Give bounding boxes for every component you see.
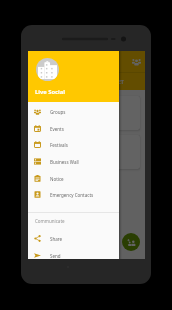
staticText: Communicate (35, 218, 65, 224)
button[interactable]: Notice (28, 170, 119, 187)
staticText: Festivals (50, 142, 68, 148)
button[interactable] (33, 135, 140, 169)
staticText: Notice (50, 176, 64, 182)
staticText: Emergency Contacts (50, 192, 94, 198)
button[interactable]: Emergency Contacts (28, 186, 119, 203)
staticText: Live Social (35, 88, 65, 96)
staticText: Business Wall (50, 159, 79, 165)
button[interactable]: Live Social (28, 51, 119, 102)
button[interactable]: Add group (122, 233, 140, 251)
staticText: Send (50, 253, 61, 259)
staticText: MARKET (103, 78, 124, 85)
staticText: Groups (50, 109, 66, 115)
button[interactable]: Groups (28, 103, 119, 120)
button[interactable]: Send (28, 247, 119, 264)
button[interactable]: Events (28, 120, 119, 137)
button[interactable]: Festivals (28, 136, 119, 153)
staticText: Events (50, 126, 64, 132)
button[interactable]: Share (28, 230, 119, 247)
button[interactable]: Business Wall (28, 153, 119, 170)
button[interactable]: EVENTS (31, 78, 54, 85)
button[interactable]: Groups (130, 55, 143, 68)
staticText: Share (50, 236, 63, 242)
button[interactable] (33, 96, 140, 130)
staticText: Live Social (38, 57, 75, 67)
button[interactable]: MARKET (101, 78, 126, 85)
staticText: EVENTS (33, 78, 52, 85)
